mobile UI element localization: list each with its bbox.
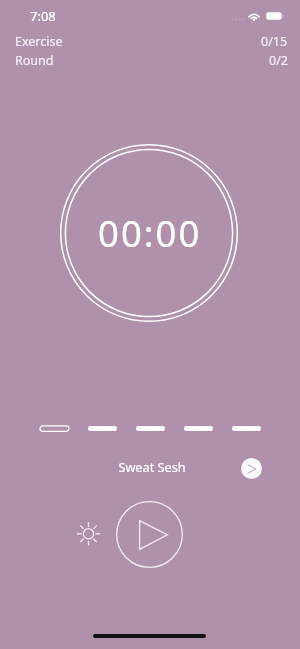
staticText: 7:08: [30, 7, 56, 25]
button[interactable]: Sweat Sesh: [0, 449, 300, 487]
button[interactable]: Brightness: [76, 522, 101, 547]
button[interactable]: Next workout: [241, 458, 262, 479]
staticText: 0/2: [269, 52, 288, 69]
staticText: Sweat Sesh: [2, 458, 300, 475]
staticText: 0/15: [261, 33, 288, 50]
button[interactable]: Start: [116, 501, 183, 568]
staticText: Exercise: [15, 33, 63, 50]
staticText: Round: [15, 52, 54, 69]
staticText: 00:00: [98, 208, 202, 258]
